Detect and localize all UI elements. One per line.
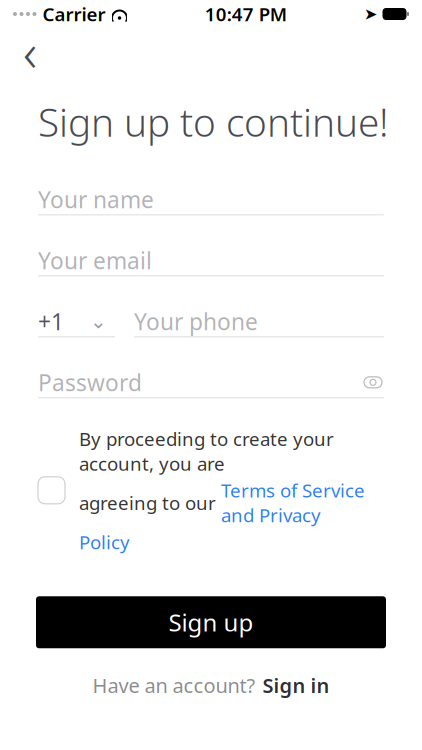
staticText: Your email — [38, 245, 152, 275]
button[interactable]: Have an account? — [92, 670, 329, 700]
staticText: ‹ — [23, 16, 37, 86]
staticText: agreeing to our — [79, 490, 221, 515]
button[interactable]: Country code +1 — [38, 306, 115, 337]
staticText: Your phone — [134, 306, 258, 336]
staticText: Terms of Service and Privacy — [221, 478, 365, 527]
staticText: By proceeding to create your account, yo… — [79, 426, 334, 476]
staticText: Your name — [38, 184, 154, 214]
button[interactable]: By proceeding to create your account, yo… — [38, 426, 384, 554]
button[interactable]: Show password — [362, 371, 384, 393]
button[interactable]: Back — [8, 29, 52, 73]
staticText: +1 — [38, 306, 64, 336]
staticText: Have an account? — [92, 672, 255, 699]
staticText: Sign in — [262, 672, 329, 699]
staticText: ⌄ — [90, 310, 107, 333]
staticText: Carrier — [42, 2, 105, 26]
staticText: ➤ — [364, 5, 377, 23]
staticText: 10:47 PM — [205, 2, 287, 26]
button[interactable]: Sign up — [36, 596, 386, 648]
staticText: Password — [38, 367, 142, 397]
staticText: Sign up — [168, 606, 253, 638]
staticText: Sign up to continue! — [38, 96, 389, 147]
staticText: Policy — [79, 529, 130, 554]
